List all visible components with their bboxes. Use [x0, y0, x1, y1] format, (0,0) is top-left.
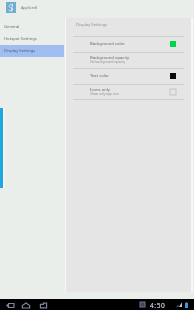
staticText: Text color	[90, 73, 110, 79]
button[interactable]: Back	[1, 299, 18, 310]
button[interactable]: Home	[18, 299, 35, 310]
button[interactable]: Icons only	[66, 85, 191, 100]
staticText: Display Settings	[76, 22, 108, 28]
staticText: Hotspot Settings	[4, 36, 37, 42]
staticText: Set background opacity	[90, 60, 126, 64]
staticText: Background color	[90, 41, 125, 47]
button[interactable]: Background color	[66, 37, 191, 52]
staticText: Background opacity	[90, 55, 130, 61]
staticText: AppScroll	[21, 5, 38, 10]
staticText: General	[4, 24, 20, 30]
button[interactable]: Background opacity	[66, 53, 191, 68]
staticText: Icons only	[90, 87, 110, 93]
button[interactable]: App icon	[6, 2, 16, 13]
staticText: 4:50	[150, 301, 166, 310]
button[interactable]: Hotspot Settings	[0, 33, 64, 45]
button[interactable]: Text color	[66, 69, 191, 84]
staticText: Show only app icon	[90, 92, 119, 96]
button[interactable]: General	[0, 21, 64, 33]
staticText: Display Settings	[4, 48, 36, 54]
button[interactable]: Recent apps	[35, 299, 52, 310]
button[interactable]: Display Settings	[0, 45, 64, 57]
